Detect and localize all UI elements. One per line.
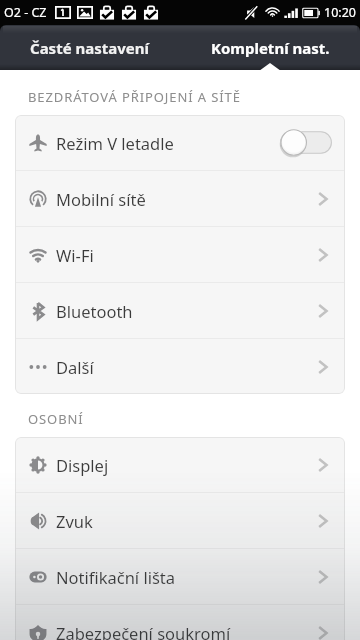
staticText: Zabezpečení soukromí	[56, 622, 231, 640]
staticText: Časté nastavení	[30, 38, 150, 58]
staticText: Režim V letadle	[56, 132, 174, 154]
staticText: Bluetooth	[56, 300, 133, 322]
button[interactable]: Zvuk	[15, 493, 345, 548]
staticText: Displej	[56, 454, 109, 476]
staticText: 10:20	[324, 4, 356, 21]
staticText: Zvuk	[56, 510, 93, 532]
button[interactable]: Časté nastavení	[0, 25, 180, 70]
staticText: OSOBNÍ	[28, 410, 84, 428]
button[interactable]: Bluetooth	[15, 283, 345, 338]
staticText: Kompletní nast.	[211, 38, 330, 58]
button[interactable]: Kompletní nast.	[180, 25, 360, 70]
button[interactable]: Režim V letadle	[15, 115, 345, 170]
button[interactable]: Další	[15, 339, 345, 394]
staticText: BEZDRÁTOVÁ PŘIPOJENÍ A SÍTĚ	[28, 88, 241, 106]
staticText: Další	[56, 356, 94, 378]
button[interactable]: Displej	[15, 437, 345, 492]
staticText: Notifikační lišta	[56, 566, 176, 588]
button[interactable]: Notifikační lišta	[15, 549, 345, 604]
staticText: Mobilní sítě	[56, 188, 146, 210]
button[interactable]: Airplane mode toggle	[280, 129, 332, 156]
button[interactable]: Mobilní sítě	[15, 171, 345, 226]
staticText: O2 - CZ	[4, 4, 47, 21]
button[interactable]: Wi-Fi	[15, 227, 345, 282]
staticText: Wi-Fi	[56, 244, 94, 266]
button[interactable]: Zabezpečení soukromí	[15, 605, 345, 640]
